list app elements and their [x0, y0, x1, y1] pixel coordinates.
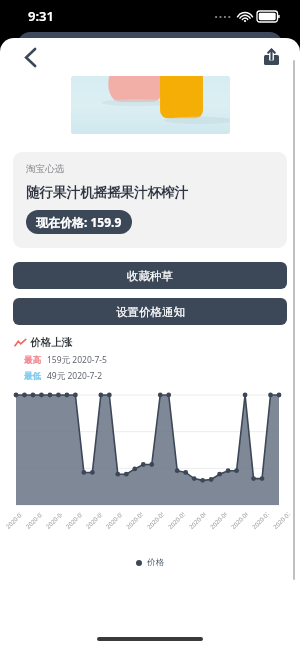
staticText: 49元 2020-7-2 [47, 370, 103, 382]
staticText: 2020-05-20 [145, 511, 166, 531]
staticText: 价格 [147, 557, 164, 568]
staticText: 设置价格通知 [116, 305, 185, 319]
staticText: 2020-06-21 [208, 511, 229, 531]
staticText: 随行果汁机摇摇果汁杯榨汁 [26, 184, 188, 201]
staticText: 2020-05-09 [84, 511, 104, 531]
staticText: 2020-05-14 [124, 511, 145, 531]
button[interactable]: Share [256, 42, 286, 72]
staticText: 淘宝心选 [26, 163, 64, 175]
staticText: 2020-06-29 [229, 511, 250, 531]
staticText: 2020-03-24 [24, 511, 44, 531]
staticText: 2020-05-23 [166, 511, 187, 531]
staticText: 159元 2020-7-5 [47, 354, 107, 366]
staticText: 2020-04-01 [44, 511, 64, 531]
staticText: 2020-07-05 [271, 511, 292, 531]
staticText: 最低 [24, 371, 41, 382]
button[interactable]: Back [14, 41, 46, 73]
button[interactable]: 收藏种草 [13, 262, 287, 289]
staticText: 9:31 [28, 7, 54, 25]
staticText: 2020-07-02 [250, 511, 271, 531]
button[interactable]: 设置价格通知 [13, 298, 287, 325]
staticText: 价格上涨 [30, 336, 72, 349]
staticText: 现在价格: 159.9 [36, 214, 122, 230]
staticText: 2020-05-12 [104, 511, 124, 531]
staticText: 收藏种草 [127, 269, 173, 283]
staticText: 2020-02- [4, 511, 24, 531]
staticText: 最高 [24, 355, 41, 366]
staticText: 2020-05-06 [64, 511, 84, 531]
staticText: 2020-06-16 [187, 511, 208, 531]
button[interactable]: 淘宝心选 [13, 152, 287, 248]
